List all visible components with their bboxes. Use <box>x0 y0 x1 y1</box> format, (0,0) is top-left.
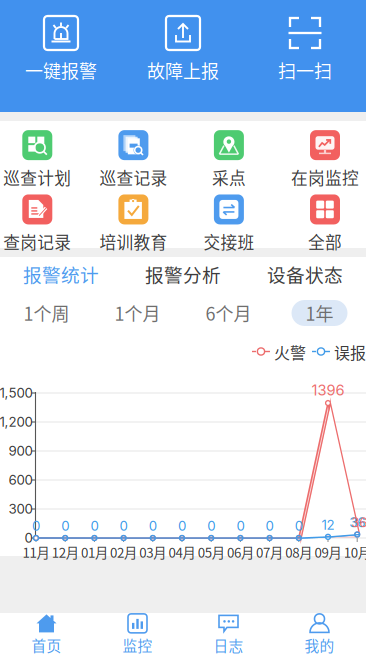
staticText: 报警分析 <box>145 260 221 287</box>
button[interactable]: 设备状态 <box>244 257 366 291</box>
staticText: 12月 <box>52 542 79 562</box>
button[interactable]: 1个月 <box>92 291 183 335</box>
staticText: 0 <box>32 518 40 534</box>
staticText: 06月 <box>227 542 254 562</box>
staticText: 误报 <box>334 340 366 364</box>
staticText: 02月 <box>110 542 137 562</box>
button[interactable]: 培训教育 <box>89 198 177 250</box>
staticText: 监控 <box>122 634 152 655</box>
staticText: 故障上报 <box>147 57 219 83</box>
staticText: 在岗监控 <box>291 165 359 189</box>
button[interactable]: 在岗监控 <box>281 134 366 186</box>
staticText: 36 <box>349 514 365 531</box>
staticText: 300 <box>8 501 32 517</box>
staticText: 巡查计划 <box>3 165 71 189</box>
button[interactable]: 采点 <box>185 134 273 186</box>
button[interactable]: 报警分析 <box>122 257 244 291</box>
button[interactable]: 全部 <box>281 198 366 250</box>
staticText: 0 <box>24 530 32 546</box>
staticText: 0 <box>178 518 186 534</box>
staticText: 03月 <box>139 542 166 562</box>
staticText: 采点 <box>212 165 246 189</box>
staticText: 1个月 <box>114 300 160 326</box>
button[interactable]: 首页 <box>1 613 92 655</box>
staticText: 0 <box>295 518 303 534</box>
staticText: 设备状态 <box>267 260 343 287</box>
staticText: 0 <box>266 518 274 534</box>
staticText: 0 <box>120 518 128 534</box>
staticText: 08月 <box>285 542 312 562</box>
staticText: 6个月 <box>205 300 251 326</box>
staticText: 火警 <box>274 340 306 364</box>
staticText: 05月 <box>198 542 225 562</box>
button[interactable]: 报警统计 <box>0 257 122 291</box>
button[interactable]: 查岗记录 <box>0 198 81 250</box>
button[interactable]: 交接班 <box>185 198 273 250</box>
staticText: 1,500 <box>0 385 32 401</box>
staticText: 全部 <box>308 229 342 253</box>
staticText: 1个周 <box>23 300 69 326</box>
staticText: 600 <box>8 472 32 488</box>
button[interactable]: 我的 <box>274 613 365 655</box>
staticText: 0 <box>207 518 215 534</box>
staticText: 首页 <box>31 634 61 655</box>
staticText: 11月 <box>22 542 49 562</box>
staticText: 36 <box>351 514 366 531</box>
staticText: 1,200 <box>0 414 32 430</box>
button[interactable]: 监控 <box>92 613 183 655</box>
staticText: 0 <box>61 518 69 534</box>
staticText: 0 <box>90 518 98 534</box>
staticText: 1年 <box>305 300 333 326</box>
staticText: 巡查记录 <box>99 165 167 189</box>
button[interactable]: 巡查计划 <box>0 134 81 186</box>
staticText: 12 <box>321 517 334 533</box>
button[interactable]: 巡查记录 <box>89 134 177 186</box>
staticText: 10月 <box>344 542 366 562</box>
staticText: 扫一扫 <box>278 57 332 83</box>
staticText: 09月 <box>314 542 341 562</box>
staticText: 04月 <box>168 542 195 562</box>
button[interactable]: 6个月 <box>183 291 274 335</box>
staticText: 01月 <box>81 542 108 562</box>
staticText: 交接班 <box>203 229 254 253</box>
staticText: 报警统计 <box>23 260 99 287</box>
button[interactable]: 1个周 <box>1 291 92 335</box>
staticText: 1396 <box>311 381 344 399</box>
staticText: 日志 <box>213 634 243 655</box>
staticText: 我的 <box>304 634 334 655</box>
staticText: 0 <box>149 518 157 534</box>
staticText: 900 <box>8 443 32 459</box>
staticText: 查岗记录 <box>3 229 71 253</box>
button[interactable]: 1年 <box>274 291 365 335</box>
button[interactable]: 故障上报 <box>122 0 244 112</box>
button[interactable]: 日志 <box>183 613 274 655</box>
staticText: 培训教育 <box>99 229 167 253</box>
staticText: 一键报警 <box>25 57 97 83</box>
staticText: 0 <box>236 518 244 534</box>
staticText: 07月 <box>256 542 283 562</box>
button[interactable]: 一键报警 <box>0 0 122 112</box>
button[interactable]: 扫一扫 <box>244 0 366 112</box>
